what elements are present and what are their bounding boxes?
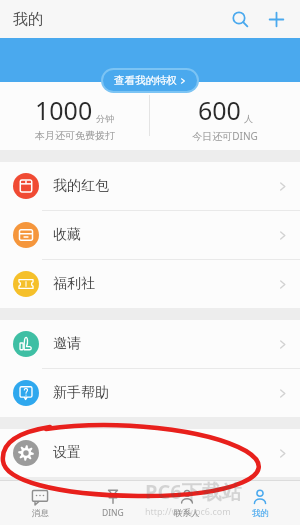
staticText: 联系人 [174, 508, 200, 519]
button[interactable]: 设置 [0, 429, 300, 477]
staticText: 分钟 [96, 113, 114, 124]
staticText: 600 [198, 93, 241, 127]
staticText: PC6下载站 [145, 478, 242, 505]
button[interactable]: 收藏 [0, 211, 300, 259]
staticText: 我的红包 [53, 177, 278, 195]
button[interactable]: 1000 [0, 93, 149, 142]
staticText: 设置 [53, 444, 278, 462]
staticText: 消息 [32, 508, 49, 519]
staticText: 邀请 [53, 335, 278, 353]
button[interactable]: 600 [150, 93, 300, 143]
button[interactable]: 邀请 [0, 320, 300, 368]
button[interactable]: 我的 [226, 481, 294, 525]
staticText: 今日还可DING [192, 129, 258, 143]
staticText: 我的 [13, 10, 43, 29]
staticText: DING [102, 507, 124, 519]
button[interactable]: Add [258, 1, 294, 37]
button[interactable]: 查看我的特权 [103, 70, 197, 91]
button[interactable]: 联系人 [153, 481, 221, 525]
button[interactable]: 消息 [6, 481, 74, 525]
staticText: http://www.pc6.com [145, 505, 231, 517]
staticText: 人 [244, 113, 253, 124]
button[interactable]: 福利社 [0, 260, 300, 308]
staticText: 1000 [35, 93, 93, 127]
button[interactable]: 我的红包 [0, 162, 300, 210]
staticText: 收藏 [53, 226, 278, 244]
button[interactable]: Search [222, 1, 258, 37]
staticText: 福利社 [53, 275, 278, 293]
staticText: 本月还可免费拨打 [35, 129, 115, 142]
button[interactable]: DING [79, 481, 147, 525]
staticText: 我的 [252, 508, 269, 519]
button[interactable]: 新手帮助 [0, 369, 300, 417]
staticText: 查看我的特权 [114, 74, 177, 87]
staticText: 新手帮助 [53, 384, 278, 402]
